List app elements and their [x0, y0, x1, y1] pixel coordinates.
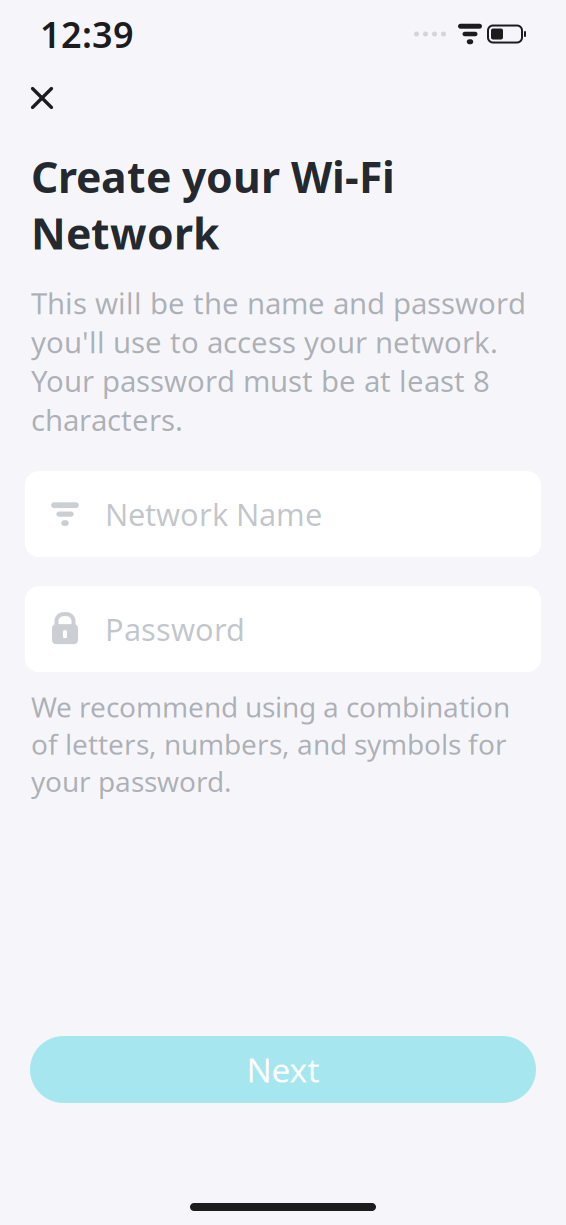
button[interactable]: Network Name: [25, 471, 541, 557]
button[interactable]: Close: [20, 76, 64, 120]
staticText: Next: [246, 1047, 319, 1092]
button[interactable]: Password: [25, 586, 541, 672]
staticText: This will be the name and password you'l…: [31, 283, 526, 439]
staticText: Create your Wi-Fi Network: [31, 148, 395, 261]
staticText: We recommend using a combination of lett…: [31, 688, 510, 800]
staticText: Network Name: [105, 494, 322, 534]
button[interactable]: Next: [30, 1036, 536, 1103]
staticText: Password: [105, 609, 245, 649]
staticText: 12:39: [40, 10, 134, 58]
